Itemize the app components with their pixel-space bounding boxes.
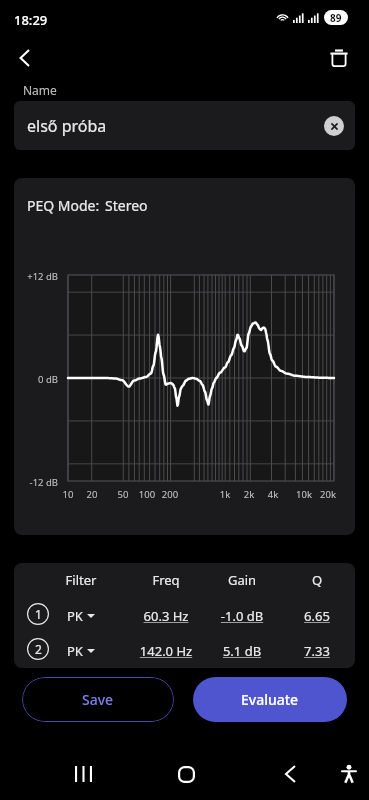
- button[interactable]: Back: [5, 38, 45, 78]
- staticText: PK: [67, 642, 83, 660]
- button[interactable]: Save: [22, 677, 174, 722]
- button[interactable]: Evaluate: [193, 677, 347, 722]
- staticText: 7.33: [282, 642, 352, 660]
- staticText: 60.3 Hz: [131, 607, 201, 625]
- staticText: 10: [48, 488, 88, 501]
- staticText: 5.1 dB: [207, 642, 277, 660]
- staticText: Gain: [202, 571, 282, 589]
- button[interactable]: Delete: [319, 38, 359, 78]
- staticText: PK: [67, 607, 83, 625]
- staticText: 10k: [284, 488, 324, 501]
- staticText: 20: [72, 488, 112, 501]
- staticText: 89: [330, 11, 342, 25]
- staticText: első próba: [27, 115, 107, 137]
- button[interactable]: Home: [162, 750, 210, 798]
- staticText: Q: [277, 571, 357, 589]
- button[interactable]: Back: [266, 750, 314, 798]
- staticText: Freq: [126, 571, 206, 589]
- staticText: 200: [150, 488, 190, 501]
- staticText: Evaluate: [241, 690, 299, 709]
- staticText: 1: [35, 606, 42, 622]
- staticText: 2k: [229, 488, 269, 501]
- staticText: -1.0 dB: [207, 607, 277, 625]
- button[interactable]: [16, 637, 353, 670]
- staticText: 1k: [205, 488, 245, 501]
- staticText: 100: [127, 488, 167, 501]
- staticText: 4k: [253, 488, 293, 501]
- staticText: 20k: [308, 488, 348, 501]
- button[interactable]: Clear: [324, 116, 344, 136]
- staticText: 0 dB: [0, 373, 58, 386]
- staticText: -12 dB: [0, 476, 58, 489]
- staticText: Filter: [41, 571, 121, 589]
- button[interactable]: első próba: [14, 101, 355, 150]
- staticText: PEQ Mode:: [27, 196, 100, 215]
- button[interactable]: Accessibility: [325, 750, 369, 798]
- button[interactable]: [16, 602, 353, 635]
- staticText: Stereo: [105, 196, 148, 215]
- staticText: 142.0 Hz: [131, 642, 201, 660]
- staticText: 18:29: [14, 11, 48, 29]
- staticText: Name: [23, 82, 57, 98]
- staticText: +12 dB: [0, 270, 58, 283]
- staticText: 6.65: [282, 607, 352, 625]
- staticText: 50: [103, 488, 143, 501]
- staticText: 2: [35, 641, 42, 657]
- button[interactable]: Recent apps: [59, 750, 107, 798]
- staticText: Save: [82, 690, 114, 709]
